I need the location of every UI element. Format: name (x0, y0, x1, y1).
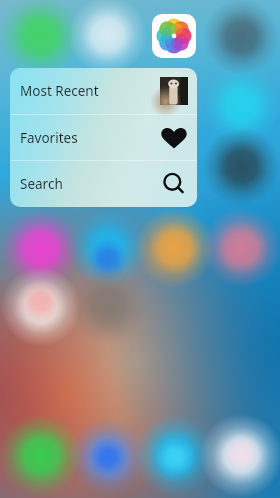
button[interactable]: Most Recent (10, 68, 197, 114)
button[interactable]: Favorites (10, 115, 197, 160)
staticText: Favorites (20, 129, 78, 147)
button[interactable]: Photos (152, 14, 196, 58)
staticText: Search (20, 175, 63, 193)
staticText: Most Recent (20, 82, 99, 100)
button[interactable]: Search (10, 161, 197, 207)
